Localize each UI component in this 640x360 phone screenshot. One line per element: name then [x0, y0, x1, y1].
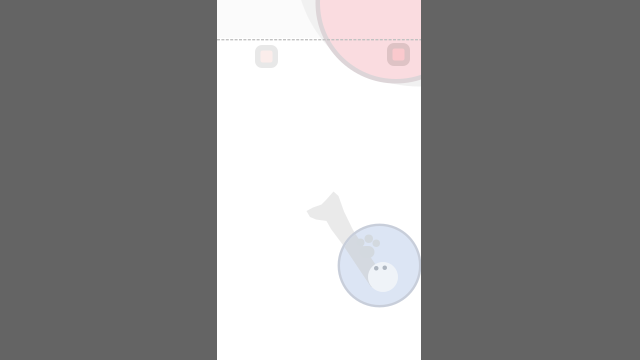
button[interactable]: Left control: [255, 45, 278, 68]
button[interactable]: Right control: [387, 43, 410, 66]
